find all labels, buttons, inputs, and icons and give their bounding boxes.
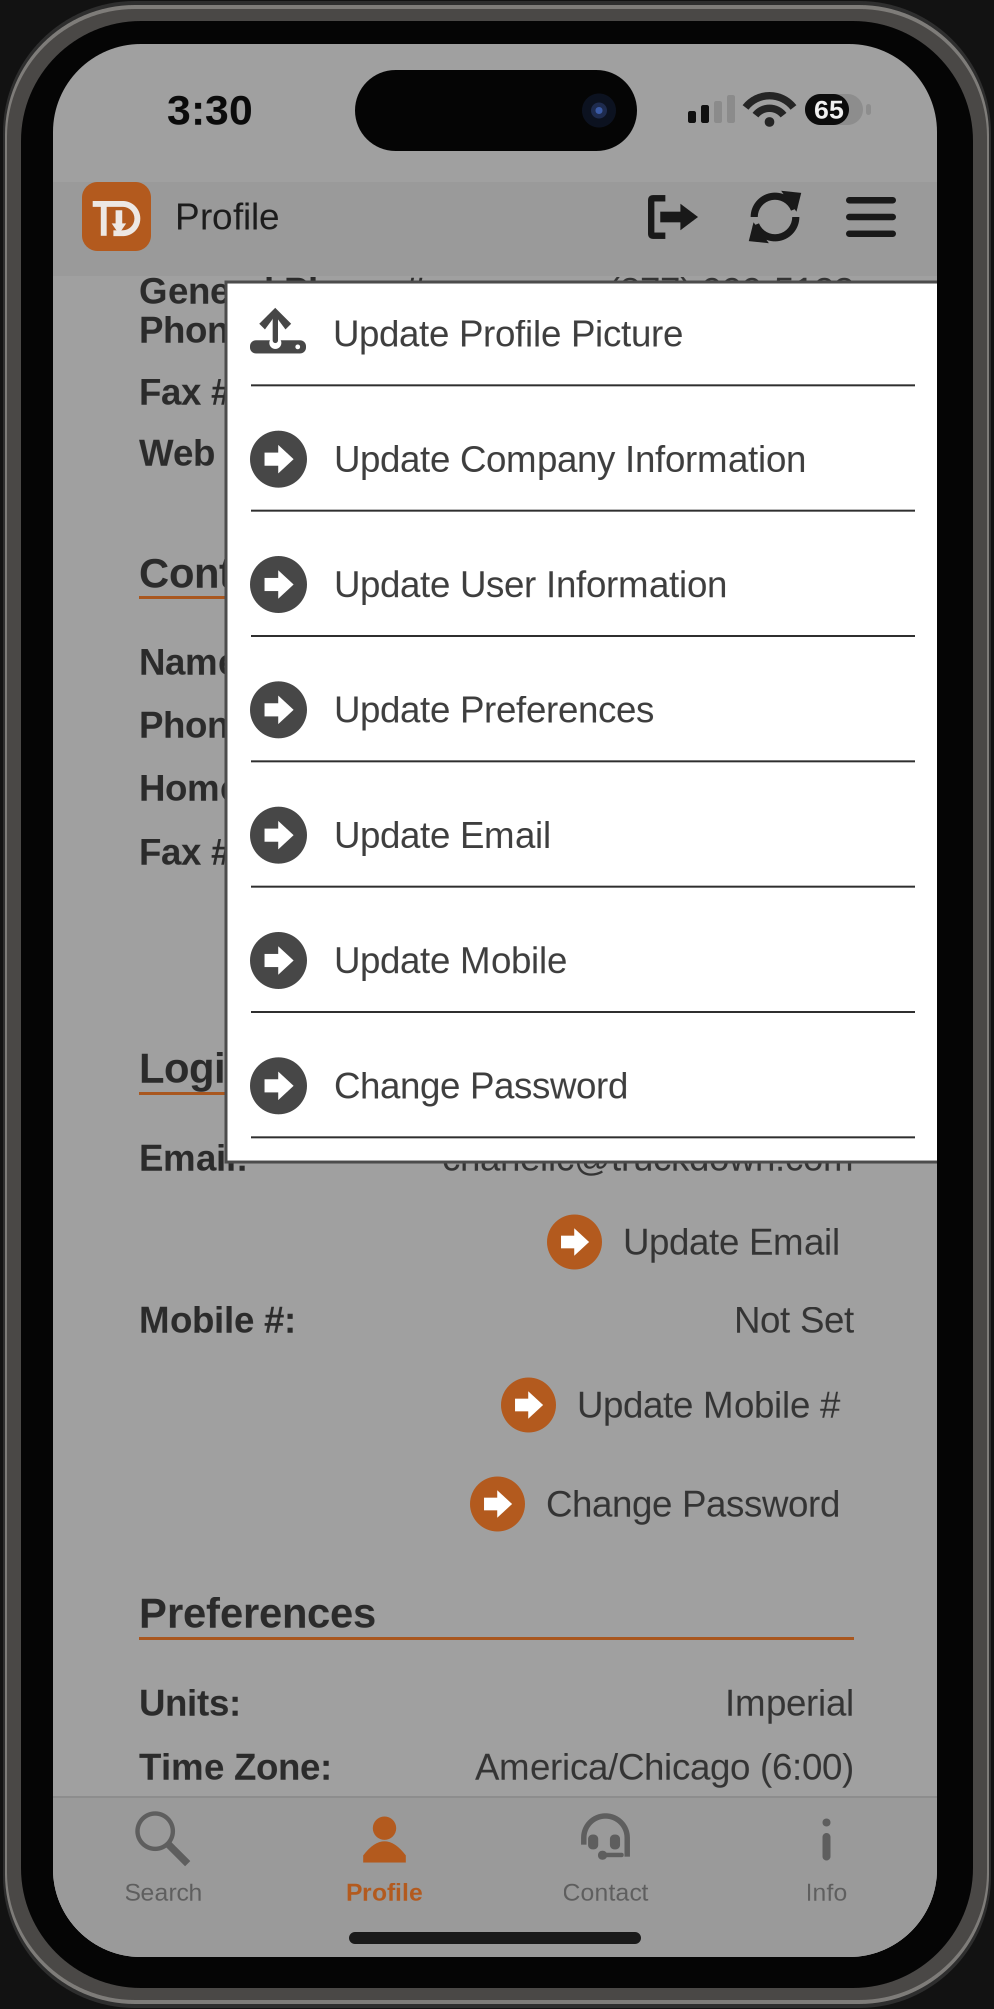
staticText: Profile [346,1878,423,1906]
staticText: chanellc@truckdown.com [442,1137,854,1178]
staticText: Info [805,1878,847,1906]
button[interactable]: Update Mobile # [53,1376,937,1434]
button[interactable]: Update Mobile [226,910,942,1035]
button[interactable]: Info [716,1803,937,1951]
staticText: 3:30 [167,86,253,134]
button[interactable]: Menu [837,183,905,251]
staticText: Fax #: [139,831,243,872]
button[interactable]: Update Email [53,1213,937,1271]
staticText: Time Zone: [139,1746,332,1787]
button[interactable]: Change Password [226,1035,942,1161]
staticText: Phone #: [139,704,291,745]
staticText: Contact [139,550,293,597]
button[interactable]: Update Company Information [226,409,942,534]
button[interactable]: Update Email [226,785,942,910]
staticText: Name: [139,641,250,682]
button[interactable]: Refresh [741,183,809,251]
staticText: Units: [139,1682,241,1723]
button[interactable]: Update Preferences [226,659,942,785]
staticText: Update Email [334,815,551,856]
button[interactable]: Search [53,1803,274,1951]
staticText: Search [124,1878,202,1906]
staticText: Update Email [623,1221,840,1262]
button[interactable]: Profile [274,1803,495,1951]
button[interactable]: Contact [495,1803,716,1951]
staticText: Fax #: [139,371,243,412]
staticText: Update Mobile [334,940,567,981]
staticText: (877) 999-5123 [608,270,854,311]
staticText: Update Company Information [334,439,806,480]
staticText: Login [139,1045,251,1092]
staticText: Update User Information [334,564,727,605]
staticText: General Phone #: [139,270,436,311]
staticText: Update Mobile # [577,1384,840,1425]
button[interactable]: Change Password [53,1475,937,1533]
button[interactable]: Sign out [639,183,707,251]
staticText: Preferences [139,1590,376,1637]
staticText: Change Password [334,1065,628,1106]
staticText: Phone #: [139,309,291,350]
staticText: Web Site: [139,432,303,473]
staticText: Contact [562,1878,648,1906]
staticText: Mobile #: [139,1299,296,1340]
staticText: Change Password [546,1483,840,1524]
staticText: Profile [175,196,280,237]
button[interactable]: Update User Information [226,534,942,659]
button[interactable]: Update Profile Picture [226,283,942,409]
staticText: Not Set [734,1299,854,1340]
staticText: Home #: [139,767,282,808]
staticText: America/Chicago (6:00) [475,1746,854,1787]
staticText: Update Profile Picture [333,313,683,354]
staticText: Email: [139,1137,248,1178]
staticText: 65 [814,95,844,124]
staticText: Imperial [725,1682,854,1723]
staticText: Update Preferences [334,689,654,730]
